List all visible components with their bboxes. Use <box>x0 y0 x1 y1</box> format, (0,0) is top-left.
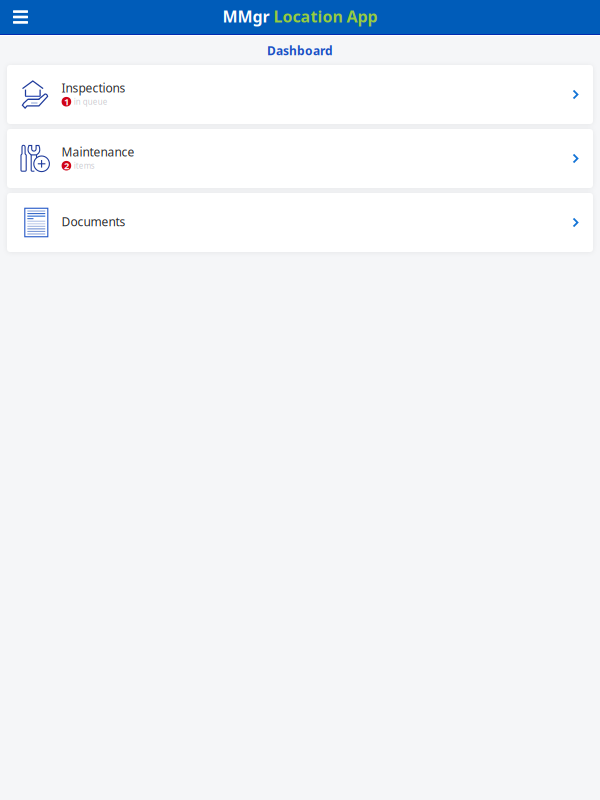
button[interactable]: Maintenance <box>7 129 593 188</box>
staticText: items <box>74 160 95 171</box>
staticText: 2 <box>64 159 69 172</box>
staticText: MMgr <box>222 6 269 27</box>
staticText: in queue <box>74 96 108 107</box>
button[interactable]: Inspections <box>7 65 593 124</box>
staticText: Inspections <box>62 80 126 96</box>
button[interactable]: Documents <box>7 193 593 252</box>
staticText: Maintenance <box>62 144 135 160</box>
staticText: Dashboard <box>267 42 333 58</box>
staticText: Location App <box>269 6 377 27</box>
staticText: Documents <box>62 213 126 229</box>
staticText: 1 <box>64 95 69 108</box>
button[interactable]: Menu <box>0 0 37 34</box>
